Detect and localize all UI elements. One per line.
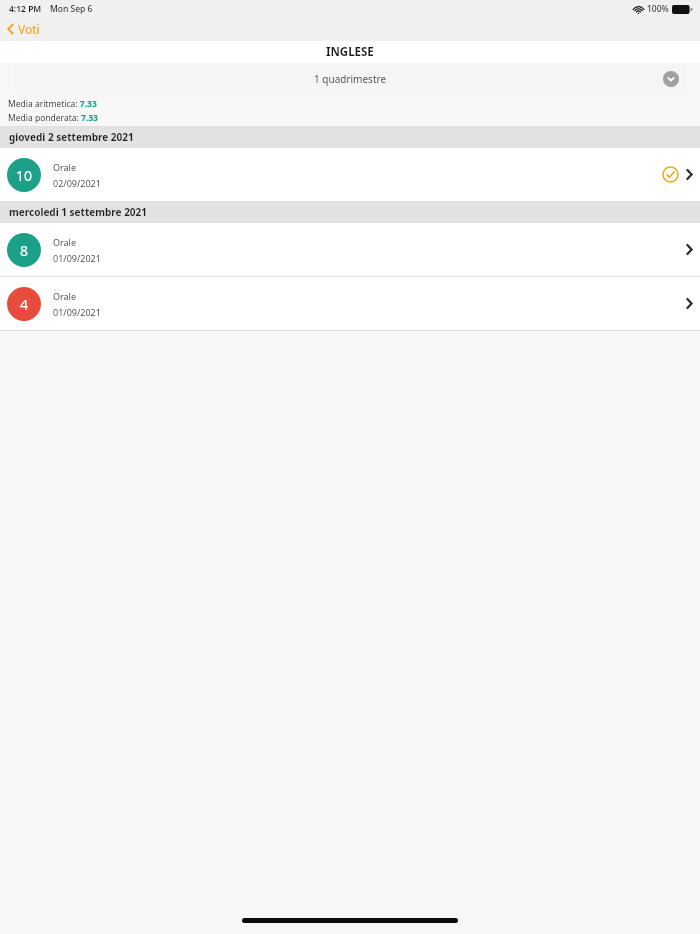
staticText: 8 bbox=[20, 241, 29, 260]
button[interactable]: 10 bbox=[0, 148, 700, 201]
staticText: Orale bbox=[53, 236, 77, 248]
staticText: Orale bbox=[53, 161, 77, 173]
staticText: 02/09/2021 bbox=[53, 177, 101, 189]
button[interactable]: 8 bbox=[0, 223, 700, 276]
staticText: Media aritmetica: 7.33 bbox=[8, 98, 97, 110]
staticText: Orale bbox=[53, 290, 77, 302]
staticText: 4:12 PM bbox=[9, 3, 42, 15]
staticText: 1 quadrimestre bbox=[314, 72, 387, 86]
staticText: giovedì 2 settembre 2021 bbox=[9, 130, 134, 144]
other: Espandi bbox=[663, 71, 679, 87]
staticText: mercoledì 1 settembre 2021 bbox=[9, 205, 148, 219]
staticText: 10 bbox=[16, 166, 33, 185]
button[interactable]: 4 bbox=[0, 277, 700, 330]
other: Confermato bbox=[662, 166, 679, 183]
staticText: INGLESE bbox=[326, 44, 374, 60]
staticText: 01/09/2021 bbox=[53, 306, 101, 318]
staticText: 4 bbox=[20, 295, 29, 314]
button[interactable]: Voti bbox=[0, 18, 50, 40]
staticText: Media ponderata: 7.33 bbox=[8, 112, 98, 124]
staticText: 01/09/2021 bbox=[53, 252, 101, 264]
button[interactable]: 1 quadrimestre bbox=[13, 64, 687, 94]
staticText: 100% bbox=[647, 3, 669, 15]
staticText: Voti bbox=[18, 21, 40, 37]
staticText: Mon Sep 6 bbox=[50, 3, 93, 15]
